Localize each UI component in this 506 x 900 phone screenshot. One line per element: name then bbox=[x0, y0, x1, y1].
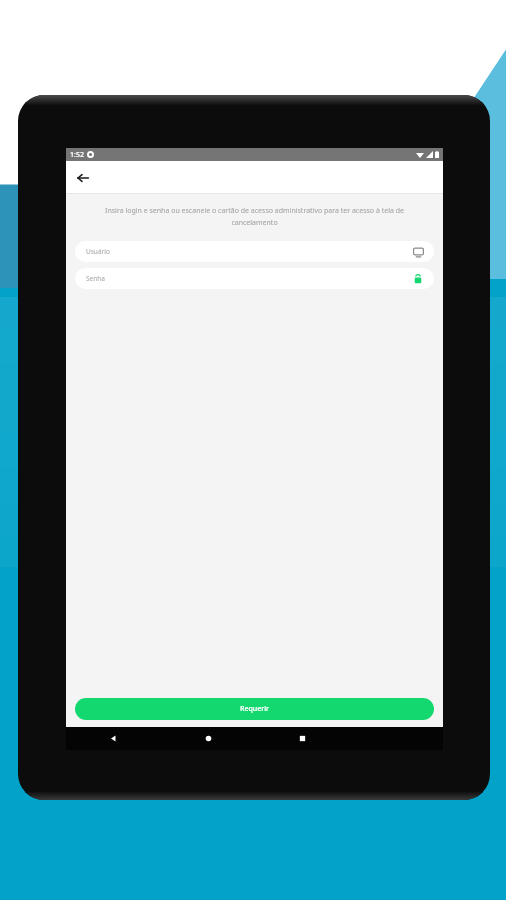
staticText: Insira login e senha ou escaneie o cartã… bbox=[82, 206, 427, 227]
button[interactable]: Escanear cartão bbox=[411, 245, 425, 259]
button[interactable]: Recentes bbox=[255, 727, 349, 750]
staticText: Usuário bbox=[86, 247, 110, 256]
button[interactable]: Usuário bbox=[75, 241, 434, 262]
staticText: Senha bbox=[86, 274, 105, 283]
button[interactable]: Voltar bbox=[72, 167, 94, 189]
staticText: 1:52 bbox=[70, 150, 84, 160]
button[interactable]: Mostrar senha bbox=[411, 272, 425, 286]
button[interactable]: Requerir bbox=[75, 698, 434, 720]
button[interactable]: Senha bbox=[75, 268, 434, 289]
button[interactable]: Voltar bbox=[66, 727, 161, 750]
button[interactable]: Início bbox=[161, 727, 255, 750]
staticText: Requerir bbox=[240, 704, 270, 714]
